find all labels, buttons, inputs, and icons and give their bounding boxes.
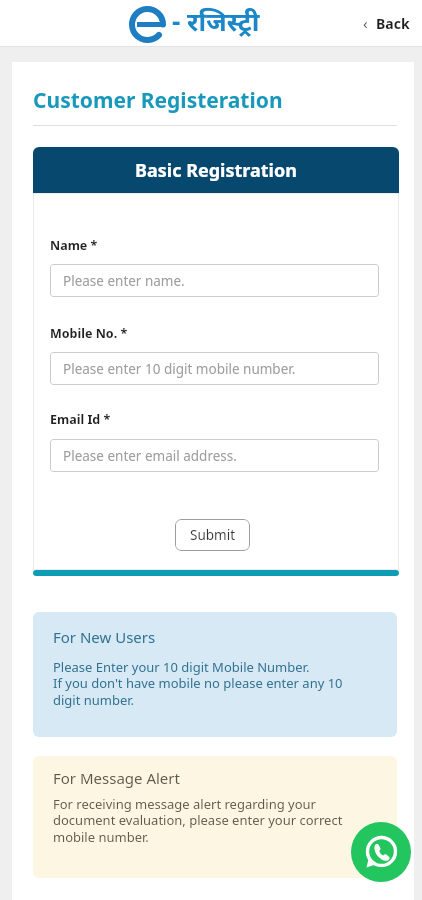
staticText: Customer Registeration	[33, 86, 283, 115]
button[interactable]: Please enter email address.	[50, 439, 379, 472]
staticText: For Message Alert	[53, 768, 180, 788]
staticText: Please enter name.	[63, 272, 185, 290]
button[interactable]: Please enter 10 digit mobile number.	[50, 352, 379, 385]
button[interactable]: ‹	[363, 13, 410, 33]
button[interactable]: Submit	[175, 519, 250, 551]
staticText: - रजिस्ट्री	[172, 3, 260, 38]
staticText: ‹	[363, 13, 368, 33]
staticText: Mobile No. *	[50, 325, 128, 342]
staticText: Please enter 10 digit mobile number.	[63, 360, 296, 378]
staticText: For receiving message alert regarding yo…	[53, 795, 343, 846]
staticText: Back	[376, 14, 410, 33]
button[interactable]	[351, 822, 411, 882]
button[interactable]: Please enter name.	[50, 264, 379, 297]
staticText: Name *	[50, 237, 98, 254]
staticText: For New Users	[53, 627, 156, 647]
staticText: Please Enter your 10 digit Mobile Number…	[53, 658, 343, 709]
staticText: Basic Registration	[135, 158, 297, 183]
staticText: Email Id *	[50, 411, 111, 428]
staticText: Submit	[190, 526, 236, 544]
staticText: Please enter email address.	[63, 447, 237, 465]
